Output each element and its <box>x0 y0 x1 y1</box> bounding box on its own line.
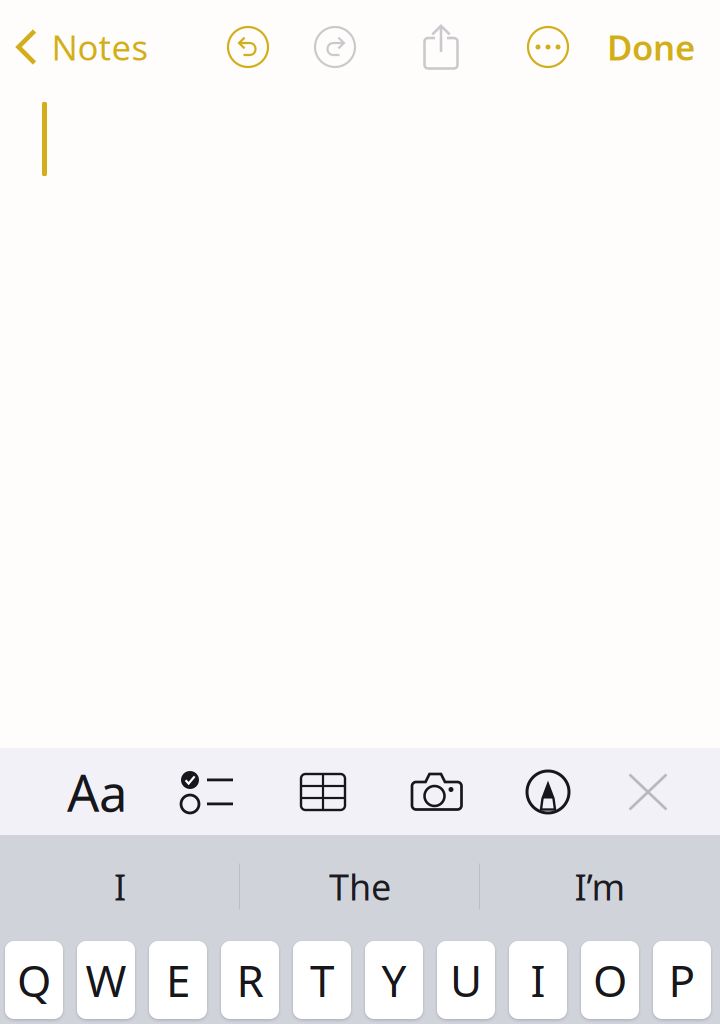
staticText: T <box>310 951 334 1009</box>
staticText: Aa <box>67 758 127 826</box>
button[interactable]: Note body <box>0 94 720 748</box>
button[interactable]: E <box>149 941 207 1019</box>
button[interactable]: The <box>240 835 480 938</box>
button[interactable]: O <box>581 941 639 1019</box>
button[interactable]: I <box>509 941 567 1019</box>
button[interactable]: Markup <box>506 750 590 834</box>
button[interactable]: I <box>0 835 240 938</box>
staticText: U <box>450 951 482 1009</box>
staticText: I <box>114 863 126 910</box>
staticText: O <box>593 951 627 1009</box>
button[interactable]: I’m <box>480 835 720 938</box>
button[interactable]: Table <box>281 750 365 834</box>
button[interactable]: W <box>77 941 135 1019</box>
button[interactable]: Text format <box>55 750 139 834</box>
button[interactable]: U <box>437 941 495 1019</box>
staticText: I’m <box>574 863 625 910</box>
button[interactable]: Undo <box>222 21 274 73</box>
button[interactable]: Checklist <box>165 750 249 834</box>
button[interactable]: Redo <box>309 21 361 73</box>
staticText: Notes <box>51 24 148 70</box>
button[interactable]: R <box>221 941 279 1019</box>
button[interactable]: Q <box>5 941 63 1019</box>
staticText: Y <box>381 951 406 1009</box>
staticText: R <box>236 951 263 1009</box>
staticText: P <box>668 951 695 1009</box>
staticText: The <box>329 863 391 910</box>
staticText: Done <box>607 24 695 70</box>
button[interactable]: P <box>653 941 711 1019</box>
button[interactable]: T <box>293 941 351 1019</box>
staticText: E <box>166 951 190 1009</box>
button[interactable]: Camera <box>395 750 479 834</box>
button[interactable]: Notes <box>0 19 156 75</box>
staticText: W <box>85 951 126 1009</box>
staticText: I <box>530 951 545 1009</box>
button[interactable]: Hide keyboard <box>606 750 690 834</box>
button[interactable]: More <box>522 21 574 73</box>
button[interactable]: Y <box>365 941 423 1019</box>
button[interactable]: Share <box>414 20 468 74</box>
staticText: Q <box>17 951 51 1009</box>
button[interactable]: Done <box>593 19 709 75</box>
